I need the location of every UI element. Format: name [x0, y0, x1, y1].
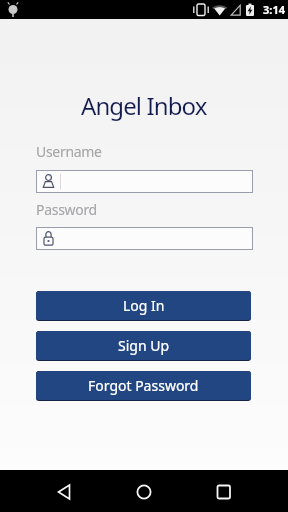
button[interactable]: [200, 472, 248, 512]
button[interactable]: [36, 227, 253, 250]
staticText: Password: [36, 200, 97, 219]
staticText: Log In: [123, 296, 165, 315]
staticText: Username: [36, 142, 102, 161]
staticText: Sign Up: [118, 336, 170, 355]
button[interactable]: Forgot Password: [36, 371, 251, 401]
staticText: Forgot Password: [88, 376, 199, 395]
button[interactable]: [36, 170, 253, 193]
button[interactable]: Log In: [36, 291, 251, 321]
button[interactable]: [40, 472, 88, 512]
staticText: Angel Inbox: [81, 89, 207, 122]
button[interactable]: Sign Up: [36, 331, 251, 361]
staticText: 3:14: [263, 2, 285, 17]
button[interactable]: [120, 472, 168, 512]
